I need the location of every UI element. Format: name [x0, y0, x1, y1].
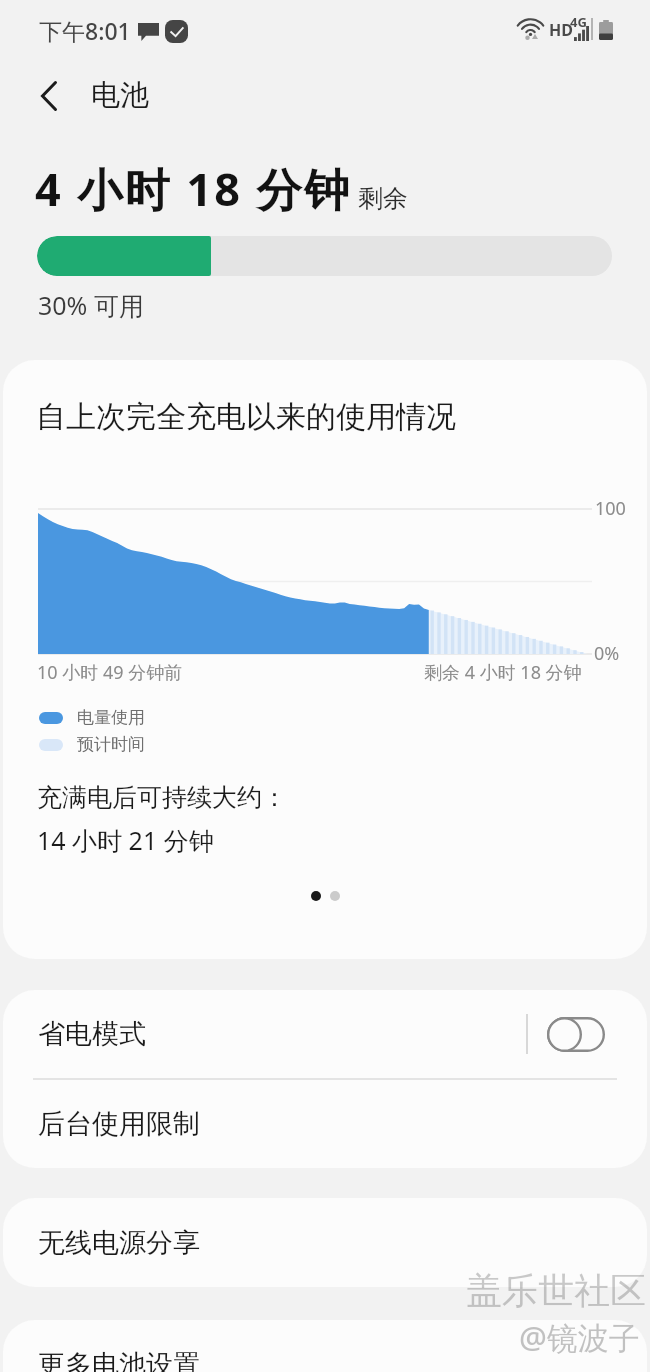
- staticText: HD: [549, 19, 573, 41]
- staticText: 30% 可用: [38, 288, 144, 322]
- button[interactable]: 无线电源分享: [3, 1198, 647, 1287]
- staticText: 省电模式: [38, 1017, 146, 1051]
- button[interactable]: Back: [27, 74, 71, 118]
- staticText: 下午8:01: [39, 15, 131, 46]
- staticText: 电量使用: [77, 707, 145, 728]
- staticText: 4G: [570, 13, 587, 31]
- staticText: 10 小时 49 分钟前: [37, 660, 183, 685]
- staticText: 盖乐世社区: [466, 1268, 646, 1313]
- staticText: 自上次完全充电以来的使用情况: [36, 398, 456, 436]
- button[interactable]: 更多电池设置: [3, 1320, 647, 1372]
- button[interactable]: 后台使用限制: [3, 1080, 647, 1168]
- staticText: 剩余 4 小时 18 分钟: [424, 660, 582, 685]
- staticText: 4 小时 18 分钟: [35, 158, 352, 219]
- staticText: 剩余: [358, 183, 408, 214]
- staticText: 充满电后可持续大约：: [37, 782, 287, 813]
- staticText: @镜波子: [519, 1316, 640, 1358]
- staticText: 14 小时 21 分钟: [37, 823, 214, 857]
- staticText: 0%: [594, 641, 620, 666]
- staticText: 后台使用限制: [38, 1107, 200, 1141]
- staticText: 更多电池设置: [38, 1348, 200, 1372]
- button[interactable]: 省电模式 toggle: [547, 1017, 605, 1052]
- staticText: 100: [595, 496, 626, 521]
- button[interactable]: 省电模式: [3, 990, 647, 1078]
- staticText: 预计时间: [77, 734, 145, 755]
- staticText: 电池: [91, 77, 149, 114]
- staticText: 无线电源分享: [38, 1226, 200, 1260]
